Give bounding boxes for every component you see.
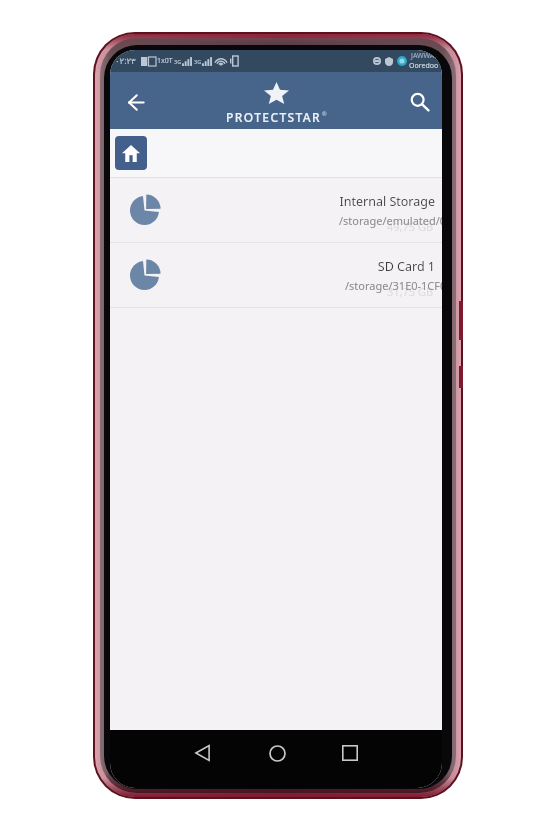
staticText: Ooredoo [409, 61, 439, 71]
button[interactable]: Back [116, 82, 156, 122]
button[interactable]: SD Card 1 [110, 243, 442, 308]
staticText: 49,75 GB [387, 219, 434, 234]
staticText: 31,75 GB [387, 284, 434, 299]
staticText: SD Card 1 [377, 258, 435, 275]
staticText: Internal Storage [339, 193, 435, 210]
staticText: 3G [194, 58, 202, 65]
button[interactable]: Home [115, 136, 147, 170]
button[interactable]: Recents [330, 733, 370, 773]
button[interactable]: Back [182, 733, 222, 773]
staticText: JAWWAL [411, 51, 438, 61]
staticText: ٠٢:٢٣ [115, 55, 136, 67]
button[interactable]: Home [257, 733, 297, 773]
staticText: ® [322, 110, 327, 117]
button[interactable]: Internal Storage [110, 178, 442, 243]
staticText: /storage/emulated/0 [339, 213, 442, 228]
staticText: 3G [174, 58, 182, 65]
staticText: /storage/31E0-1CF0 [345, 278, 442, 293]
staticText: PROTECTSTAR [226, 109, 322, 125]
staticText: 1x0T [157, 56, 173, 66]
button[interactable]: Search [410, 92, 430, 112]
